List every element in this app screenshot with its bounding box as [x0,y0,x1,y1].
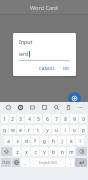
staticText: d [25,138,28,144]
button[interactable]: Backspace [76,147,87,156]
button[interactable]: GIF [28,103,36,111]
staticText: u [55,127,58,133]
staticText: p [82,127,85,133]
button[interactable]: ?123 [1,158,11,167]
button[interactable]: Add word [68,92,81,105]
staticText: 5 [37,116,40,122]
staticText: 1 [3,116,6,122]
staticText: s [16,138,19,144]
staticText: z [16,149,19,155]
button[interactable]: v [40,147,48,156]
button[interactable]: wrd [19,51,70,61]
staticText: . [69,160,71,166]
button[interactable]: Settings [16,103,24,111]
button[interactable]: s [13,136,21,145]
staticText: q [3,127,6,133]
button[interactable]: Shift [1,147,12,156]
staticText: r [28,127,30,133]
staticText: t [37,127,39,133]
button[interactable]: Sticker [40,103,48,111]
staticText: i [64,127,66,133]
button[interactable]: CANCEL [37,65,57,73]
button[interactable]: . [66,158,74,167]
button[interactable]: n [58,147,66,156]
staticText: k [70,138,73,144]
button[interactable]: b [49,147,57,156]
button[interactable]: x [22,147,30,156]
button[interactable]: 6 [43,114,51,123]
button[interactable]: English (US) [30,158,65,167]
button[interactable]: t [34,125,42,134]
staticText: x [25,149,28,155]
staticText: f [34,138,36,144]
button[interactable]: k [67,136,75,145]
staticText: j [61,138,63,144]
staticText: o [73,127,76,133]
button[interactable]: g [40,136,48,145]
staticText: g [43,138,46,144]
button[interactable]: 0 [79,114,87,123]
staticText: , [24,160,26,166]
staticText: b [52,149,55,155]
staticText: 0 [82,116,85,122]
staticText: w [11,127,15,133]
button[interactable]: 8 [61,114,69,123]
staticText: l [79,138,81,144]
staticText: 8 [64,116,67,122]
button[interactable]: Emoji [4,103,12,111]
staticText: English (US) [39,161,57,165]
button[interactable]: Clipboard [64,103,72,111]
button[interactable]: z [13,147,21,156]
staticText: m [69,149,74,155]
button[interactable]: OK [61,65,71,73]
staticText: Word Card [30,4,58,11]
staticText: 2 [11,116,14,122]
button[interactable]: h [49,136,57,145]
staticText: OK [63,66,69,72]
button[interactable]: l [76,136,84,145]
staticText: e [19,127,22,133]
staticText: CANCEL [39,66,55,72]
staticText: ?123 [2,160,10,165]
button[interactable]: p [79,125,87,134]
button[interactable]: m [67,147,75,156]
button[interactable]: d [22,136,30,145]
staticText: 3 [19,116,22,122]
staticText: 9 [73,116,76,122]
button[interactable]: q [1,125,8,134]
staticText: 7 [55,116,58,122]
staticText: 6 [46,116,49,122]
button[interactable]: u [52,125,60,134]
button[interactable]: c [31,147,39,156]
staticText: wrd [19,51,28,58]
button[interactable]: a [4,136,12,145]
button[interactable]: 2 [9,114,16,123]
button[interactable]: w [9,125,16,134]
button[interactable]: Change language [12,158,20,167]
button[interactable]: i [61,125,69,134]
button[interactable]: Search [52,103,60,111]
button[interactable]: f [31,136,39,145]
staticText: a [7,138,10,144]
button[interactable]: r [25,125,33,134]
button[interactable]: Enter [75,158,87,167]
staticText: y [46,127,49,133]
button[interactable]: j [58,136,66,145]
staticText: v [43,149,46,155]
staticText: Input [19,38,33,45]
button[interactable]: 4 [25,114,33,123]
staticText: n [61,149,64,155]
staticText: 4 [28,116,31,122]
button[interactable]: 9 [70,114,78,123]
button[interactable]: , [21,158,29,167]
button[interactable]: e [17,125,24,134]
button[interactable]: 7 [52,114,60,123]
staticText: h [52,138,55,144]
button[interactable]: 1 [1,114,8,123]
button[interactable]: y [43,125,51,134]
button[interactable]: More [76,103,84,111]
button[interactable]: 5 [34,114,42,123]
button[interactable]: 3 [17,114,24,123]
button[interactable]: o [70,125,78,134]
staticText: c [34,149,37,155]
